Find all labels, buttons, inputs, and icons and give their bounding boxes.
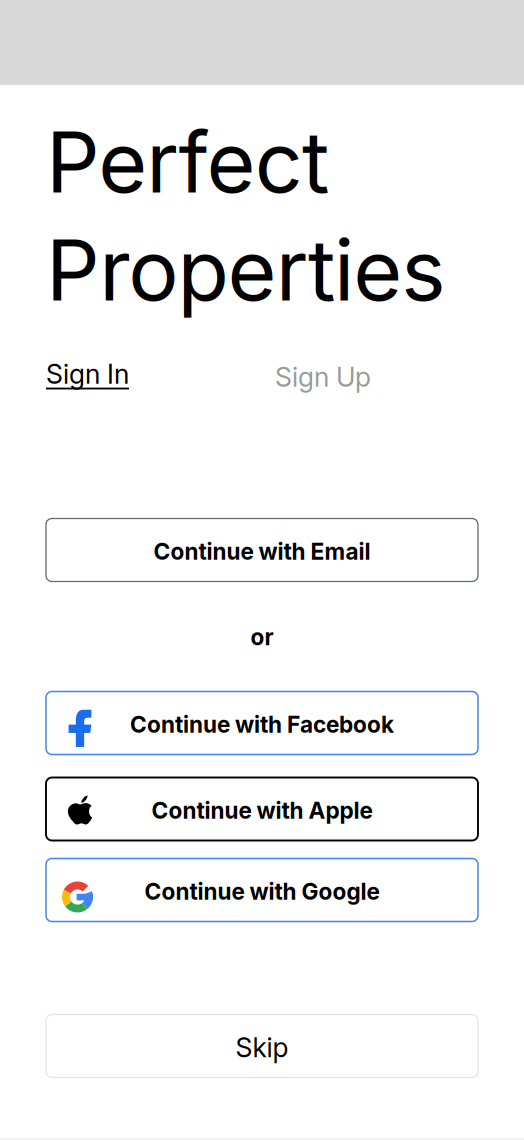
button[interactable]: Continue with Apple bbox=[46, 777, 478, 840]
staticText: Properties bbox=[46, 219, 445, 321]
staticText: or bbox=[250, 623, 273, 651]
staticText: Continue with Apple bbox=[151, 797, 372, 824]
button[interactable]: Sign In bbox=[46, 350, 206, 398]
staticText: Continue with Email bbox=[153, 538, 370, 565]
staticText: Continue with Google bbox=[144, 878, 379, 905]
button[interactable]: Skip bbox=[46, 1014, 478, 1077]
button[interactable]: Continue with Google bbox=[46, 858, 478, 921]
staticText: Sign Up bbox=[275, 361, 371, 393]
button[interactable]: Continue with Facebook bbox=[46, 691, 478, 754]
staticText: Sign In bbox=[46, 358, 129, 390]
staticText: Skip bbox=[235, 1031, 288, 1064]
staticText: Continue with Facebook bbox=[130, 711, 394, 738]
staticText: Perfect bbox=[46, 111, 329, 213]
button[interactable]: Sign Up bbox=[275, 353, 435, 401]
button[interactable]: Continue with Email bbox=[46, 518, 478, 581]
